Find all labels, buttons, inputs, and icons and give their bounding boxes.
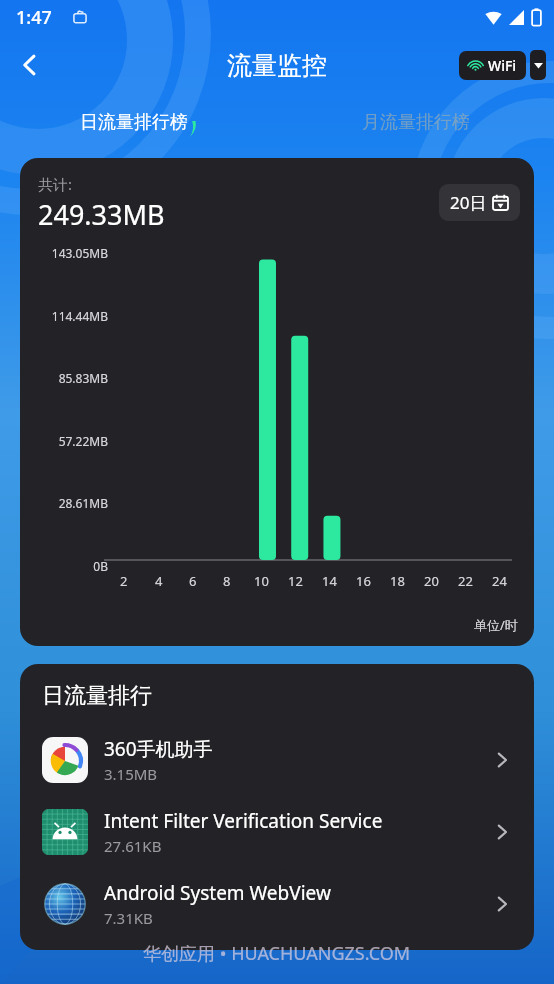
staticText: 85.83MB <box>58 370 108 386</box>
staticText: 27.61KB <box>104 836 162 856</box>
staticText: 249.33MB <box>38 196 165 233</box>
button[interactable]: 360手机助手 <box>20 724 534 796</box>
staticText: 1:47 <box>16 5 52 30</box>
button[interactable]: Android System WebView <box>20 868 534 940</box>
staticText: 日流量排行 <box>42 682 152 710</box>
staticText: 16 <box>356 572 371 590</box>
button[interactable]: More network options <box>530 50 546 80</box>
staticText: 8 <box>223 572 231 590</box>
other: Open details <box>492 894 512 914</box>
staticText: 20 <box>424 572 439 590</box>
staticText: 22 <box>458 572 473 590</box>
other: Open details <box>492 750 512 770</box>
staticText: Android System WebView <box>104 880 331 906</box>
staticText: 57.22MB <box>58 433 108 449</box>
staticText: 0B <box>93 558 108 574</box>
button[interactable]: WiFi <box>459 51 526 80</box>
staticText: 18 <box>390 572 405 590</box>
button[interactable]: 月流量排行榜 <box>277 111 554 134</box>
staticText: 10 <box>254 572 269 590</box>
other: Open details <box>492 822 512 842</box>
staticText: 华创应用 • HUACHUANGZS.COM <box>143 941 411 966</box>
button[interactable]: 20日 <box>439 184 520 221</box>
staticText: 2 <box>120 572 128 590</box>
staticText: WiFi <box>488 56 517 75</box>
staticText: 12 <box>288 572 303 590</box>
staticText: 114.44MB <box>51 308 108 324</box>
staticText: 24 <box>492 572 507 590</box>
staticText: 日流量排行榜 <box>80 111 188 134</box>
staticText: 360手机助手 <box>104 736 213 762</box>
button[interactable]: Intent Filter Verification Service <box>20 796 534 868</box>
button[interactable]: 日流量排行榜 <box>0 111 277 134</box>
staticText: 月流量排行榜 <box>362 111 470 134</box>
staticText: 7.31KB <box>104 908 153 928</box>
staticText: 143.05MB <box>51 245 108 261</box>
staticText: 14 <box>322 572 337 590</box>
staticText: 20日 <box>450 191 487 214</box>
staticText: 单位/时 <box>474 616 518 634</box>
staticText: 6 <box>189 572 197 590</box>
staticText: 流量监控 <box>227 50 327 81</box>
staticText: 共计: <box>38 174 73 194</box>
button[interactable]: Back <box>6 41 54 89</box>
staticText: 3.15MB <box>104 764 158 784</box>
staticText: 4 <box>155 572 163 590</box>
staticText: Intent Filter Verification Service <box>104 808 383 834</box>
staticText: 28.61MB <box>58 495 108 511</box>
